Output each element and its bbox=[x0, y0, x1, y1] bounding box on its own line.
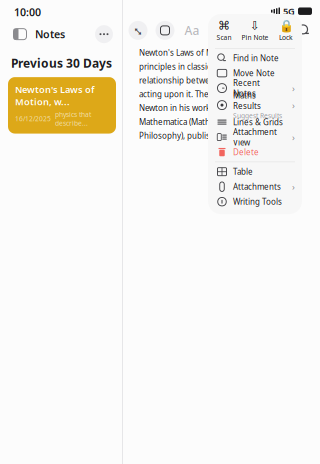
staticText: Pin Note bbox=[241, 33, 268, 42]
button[interactable]: Find in Note bbox=[208, 51, 302, 66]
staticText: Maths Results bbox=[233, 90, 261, 111]
staticText: Mathematica (Mathema bbox=[139, 116, 226, 127]
staticText: Scan bbox=[216, 33, 231, 42]
button[interactable]: ⌘ bbox=[208, 19, 239, 43]
staticText: Lines & Grids bbox=[233, 117, 283, 127]
button[interactable]: New Note bbox=[154, 19, 176, 41]
staticText: Notes bbox=[35, 27, 65, 41]
button[interactable]: Move Note bbox=[208, 66, 302, 81]
staticText: relationship between an bbox=[139, 75, 231, 86]
staticText: Newton's Laws of Motio bbox=[139, 47, 228, 58]
staticText: 🔒 bbox=[278, 19, 293, 32]
button[interactable]: Delete bbox=[208, 145, 302, 160]
staticText: 16/12/2025 bbox=[15, 114, 51, 123]
staticText: ⇩ bbox=[250, 19, 260, 32]
button[interactable]: Recent Notes bbox=[208, 81, 302, 96]
staticText: Find in Note bbox=[233, 53, 279, 63]
staticText: › bbox=[292, 82, 295, 94]
staticText: Lock bbox=[279, 33, 293, 42]
button[interactable]: Search bbox=[293, 19, 315, 41]
staticText: Delete bbox=[233, 147, 259, 157]
staticText: acting upon it. They we bbox=[139, 89, 225, 99]
button[interactable]: Attachments bbox=[208, 179, 302, 194]
staticText: Newton's Laws of Motion, w... bbox=[15, 83, 94, 108]
button[interactable]: Expand Note bbox=[127, 19, 149, 41]
staticText: Attachments bbox=[233, 181, 281, 192]
staticText: Suggest Results bbox=[233, 111, 282, 120]
staticText: › bbox=[292, 99, 295, 111]
staticText: 10:00 bbox=[14, 5, 41, 19]
staticText: › bbox=[292, 131, 295, 143]
staticText: Move Note bbox=[233, 68, 275, 78]
staticText: ⌘ bbox=[218, 19, 230, 32]
button[interactable]: Newton's Laws of Motion, w... bbox=[8, 77, 116, 134]
staticText: › bbox=[292, 180, 295, 193]
staticText: Recent Notes bbox=[233, 77, 260, 99]
button[interactable]: ⇩ bbox=[239, 19, 270, 43]
button[interactable]: Show Sidebar bbox=[9, 23, 31, 45]
button[interactable]: Format bbox=[181, 19, 203, 41]
button[interactable]: More bbox=[92, 22, 116, 46]
staticText: Previous 30 Days bbox=[11, 55, 112, 71]
staticText: physics that describe... bbox=[55, 110, 91, 128]
button[interactable]: Writing Tools bbox=[208, 194, 302, 209]
staticText: Table bbox=[233, 166, 253, 177]
staticText: ⤡ bbox=[133, 18, 142, 42]
button[interactable]: Table bbox=[208, 164, 302, 179]
staticText: Writing Tools bbox=[233, 196, 282, 207]
staticText: principles in classical ph bbox=[139, 61, 229, 72]
staticText: Philosophy), published bbox=[139, 130, 225, 141]
button[interactable]: Attachment View bbox=[208, 130, 302, 145]
staticText: Attachment View bbox=[233, 126, 277, 148]
staticText: 5G bbox=[283, 5, 295, 17]
button[interactable]: Maths Results bbox=[208, 96, 302, 115]
staticText: Newton in his work Phil bbox=[139, 103, 226, 113]
button[interactable]: Lines & Grids bbox=[208, 115, 302, 130]
button[interactable]: 🔒 bbox=[270, 19, 301, 43]
staticText: Aa bbox=[184, 22, 199, 38]
